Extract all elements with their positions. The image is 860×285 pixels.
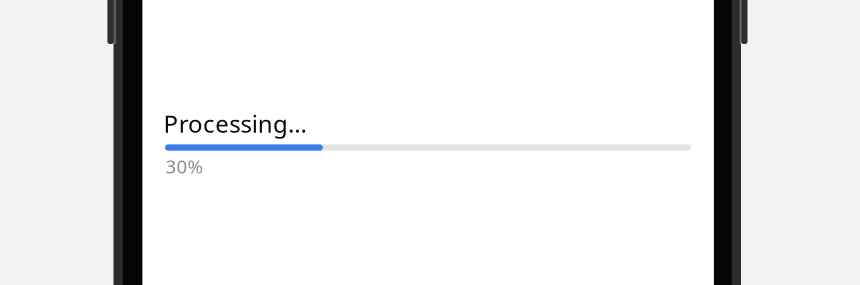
staticText: Processing... — [164, 108, 306, 139]
staticText: 30% — [165, 154, 203, 179]
